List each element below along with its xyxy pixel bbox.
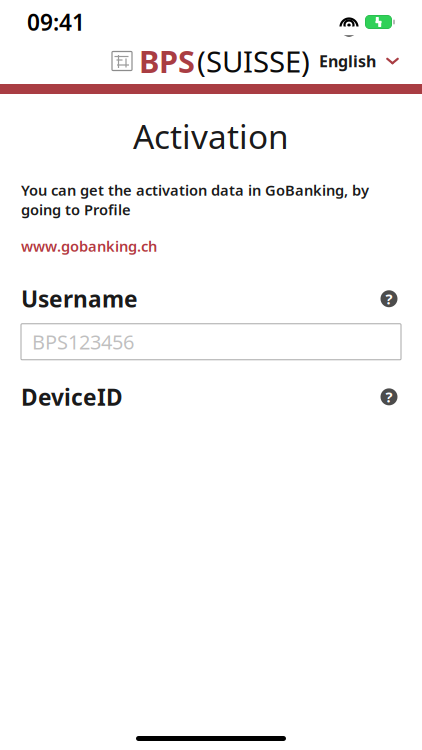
staticText: ? (385, 387, 392, 407)
staticText: Activation (133, 114, 289, 158)
staticText: www.gobanking.ch (21, 236, 157, 256)
button[interactable]: English (319, 44, 400, 78)
button[interactable]: Help about DeviceID (377, 385, 401, 409)
staticText: DeviceID (21, 382, 123, 412)
staticText: Username (21, 284, 138, 314)
staticText: BPS123456 (32, 328, 134, 355)
staticText: ? (385, 289, 392, 308)
button[interactable]: Help about Username (377, 287, 401, 311)
staticText: (SUISSE) (197, 41, 310, 80)
staticText: You can get the activation data in GoBan… (21, 180, 369, 219)
staticText: 09:41 (27, 7, 85, 37)
staticText: BPS (139, 41, 195, 81)
button[interactable]: www.gobanking.ch (21, 219, 157, 258)
staticText: English (319, 50, 376, 72)
